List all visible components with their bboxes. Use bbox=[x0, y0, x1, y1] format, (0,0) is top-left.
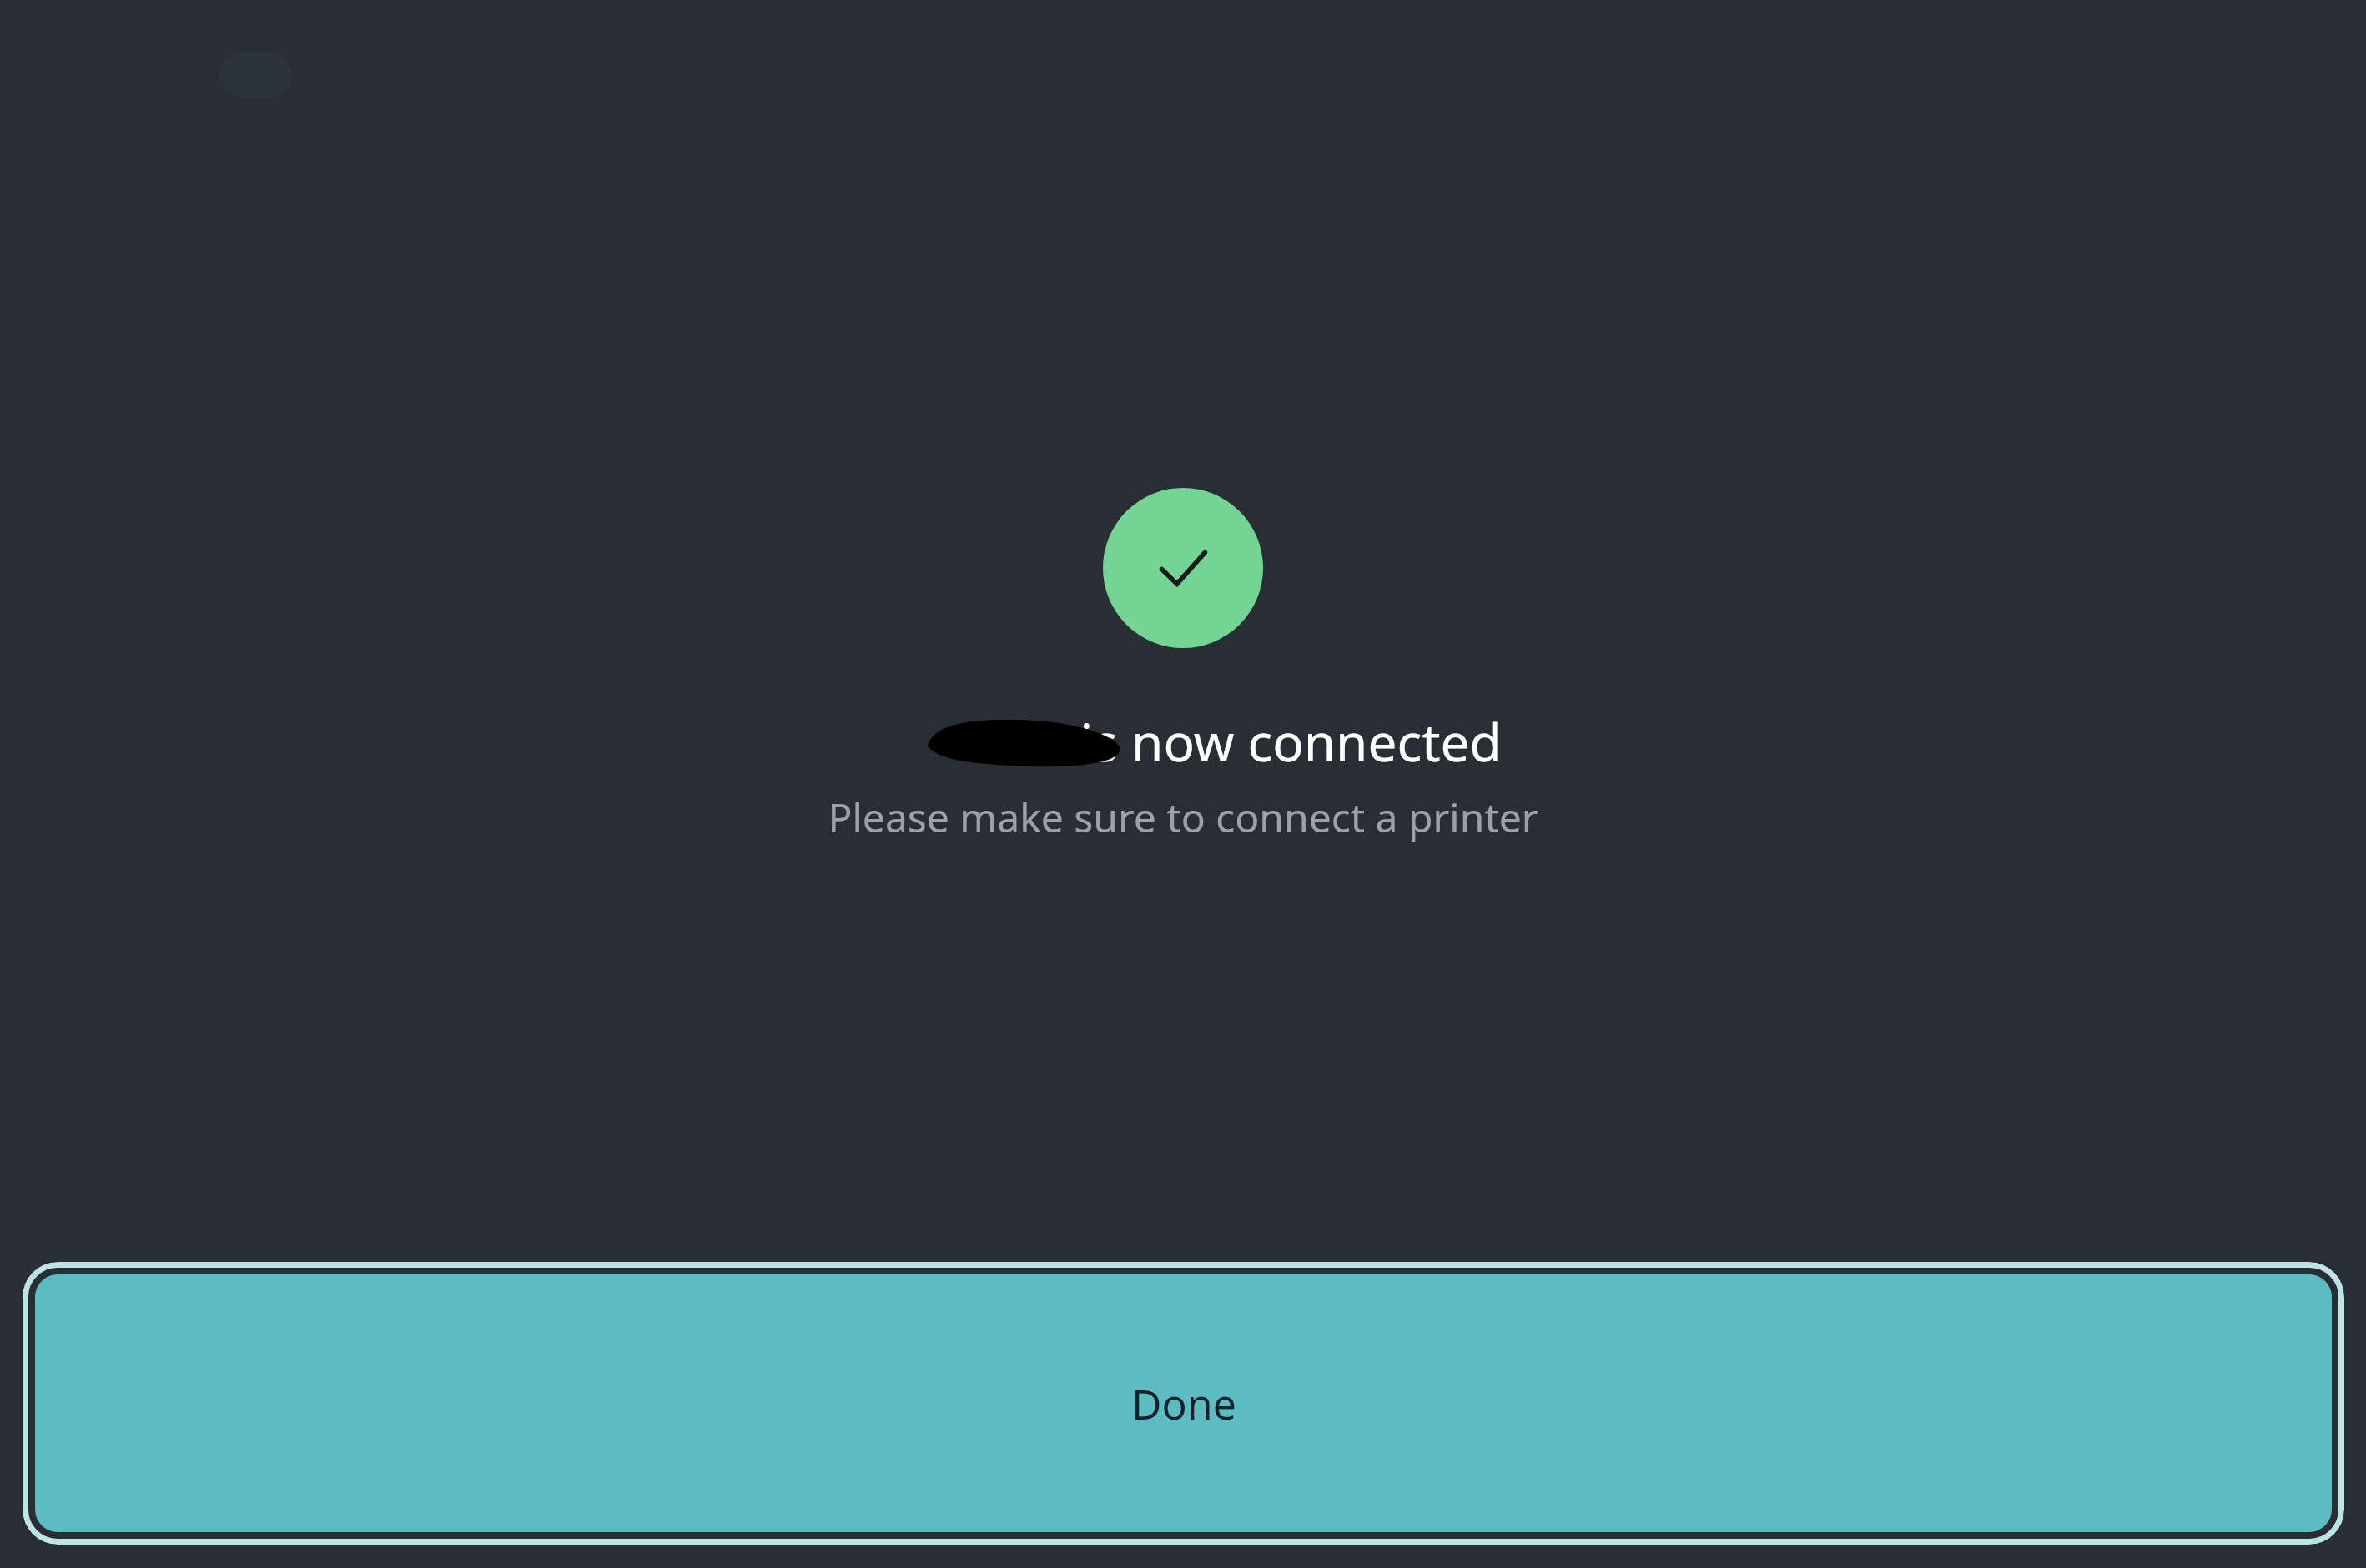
staticText: Please make sure to connect a printer bbox=[828, 790, 1538, 844]
staticText: Done bbox=[1131, 1375, 1236, 1432]
button[interactable]: Done bbox=[35, 1274, 2332, 1532]
staticText: is now connected bbox=[864, 706, 1502, 776]
